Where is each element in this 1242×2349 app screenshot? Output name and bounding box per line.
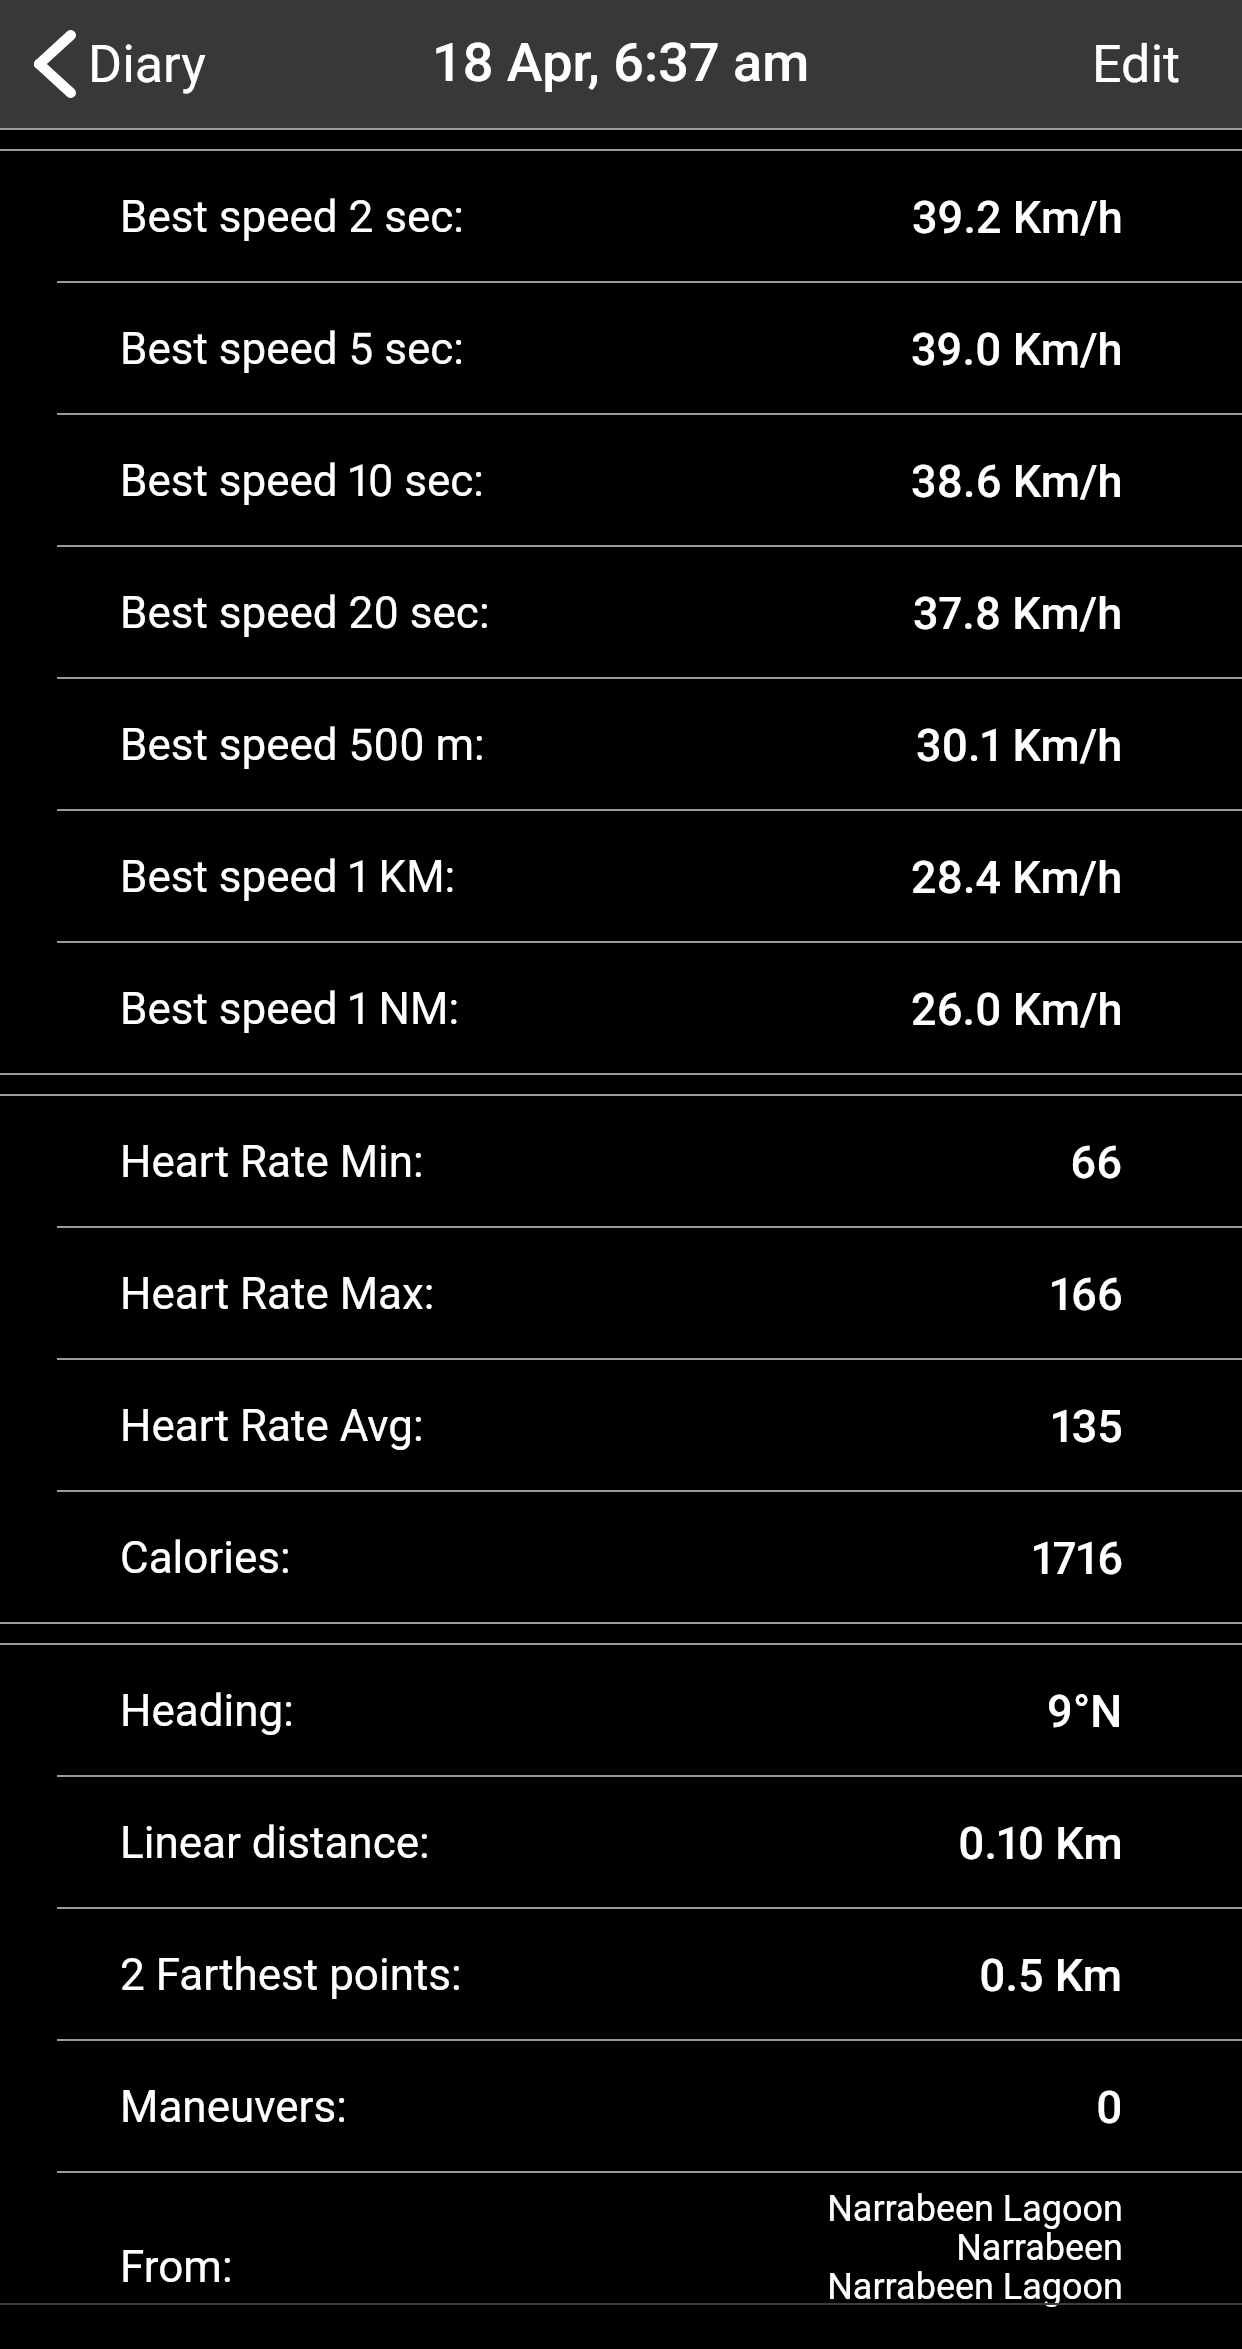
button[interactable]: Heading: xyxy=(0,1645,1242,1777)
staticText: Diary xyxy=(88,34,206,95)
staticText: 0.10 Km xyxy=(958,1817,1123,1870)
button[interactable]: Maneuvers: xyxy=(0,2041,1242,2173)
staticText: Heart Rate Max: xyxy=(120,1268,435,1320)
staticText: 66 xyxy=(1070,1136,1123,1189)
button[interactable]: Best speed 20 sec: xyxy=(0,547,1242,679)
staticText: 37.8 Km/h xyxy=(913,587,1123,640)
staticText: 1716 xyxy=(1032,1532,1123,1585)
button[interactable]: Best speed 2 sec: xyxy=(0,151,1242,283)
button[interactable]: Heart Rate Min: xyxy=(0,1096,1242,1228)
staticText: Linear distance: xyxy=(120,1817,430,1869)
staticText: Narrabeen Lagoon Narrabeen Narrabeen Lag… xyxy=(827,2190,1123,2307)
button[interactable]: Linear distance: xyxy=(0,1777,1242,1909)
staticText: Best speed 500 m: xyxy=(120,719,485,771)
staticText: Heart Rate Avg: xyxy=(120,1400,424,1452)
staticText: 39.2 Km/h xyxy=(912,191,1123,244)
button[interactable]: From: xyxy=(0,2173,1242,2305)
staticText: 2 Farthest points: xyxy=(120,1949,462,2001)
staticText: 30.1 Km/h xyxy=(916,719,1123,772)
staticText: 135 xyxy=(1051,1400,1123,1453)
staticText: 0.5 Km xyxy=(979,1949,1123,2002)
staticText: Best speed 20 sec: xyxy=(120,587,490,639)
staticText: Best speed 1 KM: xyxy=(120,851,456,903)
button[interactable]: Back to Diary xyxy=(0,0,226,128)
button[interactable]: Edit xyxy=(1062,0,1242,128)
staticText: Heart Rate Min: xyxy=(120,1136,424,1188)
staticText: 39.0 Km/h xyxy=(911,323,1123,376)
staticText: 28.4 Km/h xyxy=(911,851,1123,904)
button[interactable]: Heart Rate Max: xyxy=(0,1228,1242,1360)
staticText: Best speed 10 sec: xyxy=(120,455,484,507)
staticText: From: xyxy=(120,2241,233,2293)
staticText: 38.6 Km/h xyxy=(911,455,1123,508)
button[interactable]: Best speed 10 sec: xyxy=(0,415,1242,547)
button[interactable]: Best speed 5 sec: xyxy=(0,283,1242,415)
staticText: Maneuvers: xyxy=(120,2081,347,2133)
staticText: 0 xyxy=(1096,2081,1123,2134)
button[interactable]: Best speed 500 m: xyxy=(0,679,1242,811)
button[interactable]: Best speed 1 NM: xyxy=(0,943,1242,1075)
staticText: 166 xyxy=(1050,1268,1123,1321)
staticText: 26.0 Km/h xyxy=(911,983,1123,1036)
staticText: 18 Apr, 6:37 am xyxy=(432,31,810,94)
staticText: Best speed 2 sec: xyxy=(120,191,464,243)
staticText: Heading: xyxy=(120,1685,294,1737)
staticText: Best speed 1 NM: xyxy=(120,983,460,1035)
button[interactable]: Best speed 1 KM: xyxy=(0,811,1242,943)
staticText: Edit xyxy=(1092,34,1181,95)
staticText: Best speed 5 sec: xyxy=(120,323,464,375)
button[interactable]: 2 Farthest points: xyxy=(0,1909,1242,2041)
button[interactable]: Heart Rate Avg: xyxy=(0,1360,1242,1492)
button[interactable]: Calories: xyxy=(0,1492,1242,1624)
staticText: Calories: xyxy=(120,1532,291,1584)
staticText: 9°N xyxy=(1047,1685,1123,1738)
